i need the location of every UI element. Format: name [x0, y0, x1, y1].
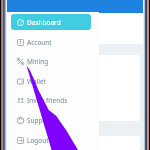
button[interactable]: Support — [11, 112, 91, 128]
button[interactable] — [11, 14, 91, 30]
staticText: Dashboard — [27, 18, 61, 27]
staticText: Wallet — [27, 77, 46, 86]
staticText: Mining — [27, 57, 49, 66]
button[interactable]: Dashboard — [11, 14, 91, 30]
button[interactable]: Logout — [11, 132, 91, 148]
button[interactable]: Mining — [11, 53, 91, 69]
staticText: Invite friends — [27, 96, 68, 105]
staticText: Account — [27, 38, 52, 47]
staticText: Logout — [27, 136, 49, 145]
button[interactable]: Account — [11, 34, 91, 50]
button[interactable]: Invite friends — [11, 92, 91, 108]
button[interactable]: Wallet — [11, 73, 91, 89]
staticText: Support — [27, 116, 52, 125]
